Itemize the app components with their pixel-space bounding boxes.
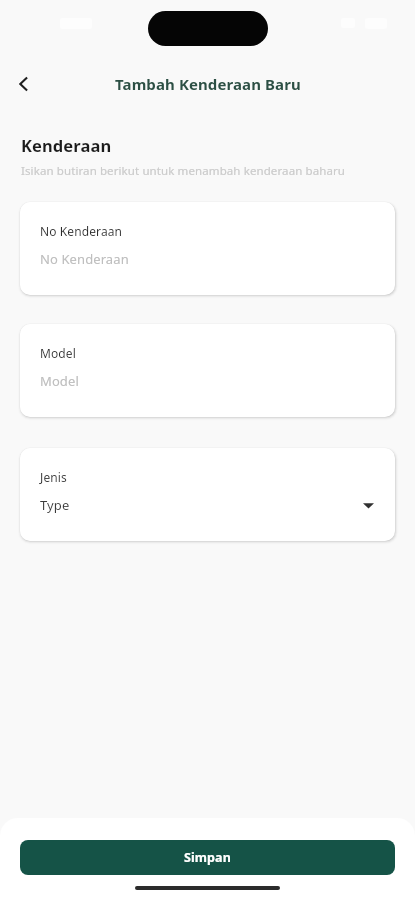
button[interactable]: Simpan <box>20 840 395 875</box>
other: Open dropdown <box>359 496 377 514</box>
staticText: Tambah Kenderaan Baru <box>115 74 301 94</box>
staticText: Isikan butiran berikut untuk menambah ke… <box>21 163 346 179</box>
button[interactable]: Jenis <box>20 448 395 541</box>
staticText: Jenis <box>40 469 67 485</box>
staticText: Simpan <box>184 849 231 866</box>
staticText: No Kenderaan <box>40 223 123 239</box>
staticText: Type <box>40 496 70 514</box>
staticText: No Kenderaan <box>40 250 129 268</box>
button[interactable]: No Kenderaan <box>20 202 395 295</box>
staticText: Kenderaan <box>21 134 112 156</box>
staticText: Model <box>40 372 79 390</box>
button[interactable]: Back <box>6 66 42 102</box>
button[interactable]: Model <box>20 324 395 417</box>
staticText: Model <box>40 345 76 361</box>
